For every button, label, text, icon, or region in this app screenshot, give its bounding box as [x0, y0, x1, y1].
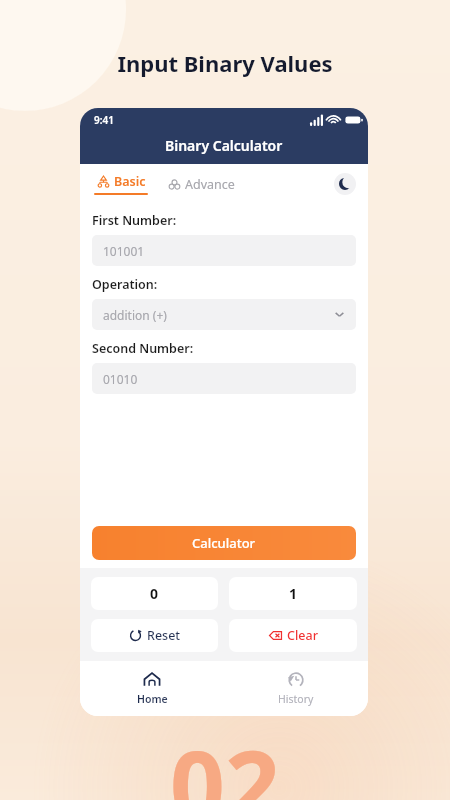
staticText: Basic — [114, 173, 146, 190]
button[interactable]: Basic — [92, 173, 150, 195]
staticText: Calculator — [192, 534, 256, 552]
staticText: Reset — [147, 627, 181, 644]
staticText: 01010 — [103, 371, 138, 387]
staticText: Second Number: — [92, 340, 194, 357]
staticText: 0 — [150, 584, 159, 603]
staticText: Home — [137, 692, 168, 706]
button[interactable]: 1 — [229, 577, 357, 610]
staticText: Binary Calculator — [165, 136, 283, 155]
button[interactable]: addition (+) — [92, 299, 356, 330]
staticText: Operation: — [92, 276, 158, 293]
staticText: First Number: — [92, 212, 177, 229]
staticText: History — [278, 692, 314, 706]
button[interactable]: 0 — [91, 577, 218, 610]
button[interactable]: Reset — [91, 619, 218, 652]
button[interactable]: Advance — [166, 176, 237, 193]
button[interactable]: History — [224, 665, 368, 712]
staticText: Input Binary Values — [117, 48, 333, 78]
staticText: 02 — [170, 718, 280, 800]
button[interactable]: 101001 — [92, 235, 356, 266]
button[interactable]: 01010 — [92, 363, 356, 394]
button[interactable]: Calculator — [92, 526, 356, 560]
button[interactable]: Toggle dark mode — [334, 173, 356, 195]
button[interactable]: Clear — [229, 619, 357, 652]
staticText: addition (+) — [103, 307, 167, 323]
staticText: 101001 — [103, 243, 145, 259]
staticText: 9:41 — [94, 113, 114, 127]
staticText: Clear — [287, 627, 318, 644]
staticText: Advance — [185, 176, 235, 193]
staticText: 1 — [289, 584, 298, 603]
button[interactable]: Home — [80, 665, 224, 712]
